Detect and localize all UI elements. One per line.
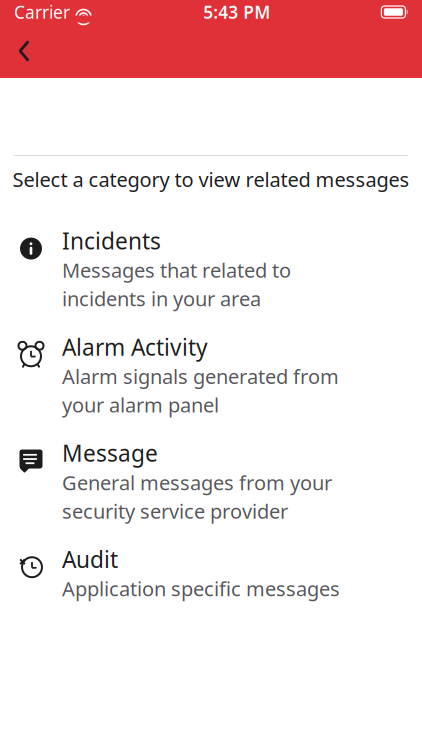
button[interactable]: Incidents [0,220,422,318]
staticText: Alarm Activity [62,332,208,362]
staticText: Application specific messages [62,575,340,602]
staticText: Messages that related to incidents in yo… [62,257,291,312]
button[interactable]: Message [0,432,422,530]
staticText: Select a category to view related messag… [12,166,409,193]
staticText: General messages from your security serv… [62,469,332,524]
button[interactable]: Back [2,29,46,73]
staticText: Audit [62,544,118,574]
button[interactable]: Alarm Activity [0,326,422,424]
staticText: Carrier [14,0,70,23]
staticText: 5:43 PM [203,0,270,23]
staticText: Incidents [62,226,161,256]
staticText: Alarm signals generated from your alarm … [62,363,339,418]
staticText: Message [62,438,158,468]
button[interactable]: Audit [0,538,422,608]
